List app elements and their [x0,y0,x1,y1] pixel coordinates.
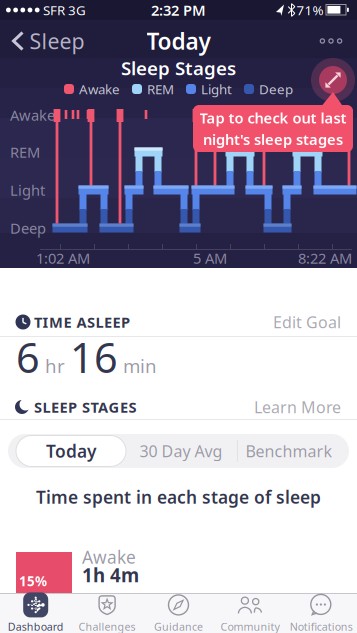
staticText: 8:22 AM [298,248,352,268]
staticText: Deep [259,80,293,98]
staticText: Tap to check out last [199,108,346,127]
staticText: REM [147,80,174,98]
button[interactable]: Learn More [241,392,341,422]
staticText: night's sleep stages [203,129,343,149]
staticText: 30 Day Avg [139,440,222,462]
staticText: Awake [79,80,120,98]
staticText: Community [220,619,279,633]
staticText: 6 [16,330,40,384]
staticText: SLEEP STAGES [34,397,136,417]
staticText: Today [146,26,210,56]
button[interactable]: 30 Day Avg [131,434,231,468]
staticText: Edit Goal [273,311,341,333]
staticText: Dashboard [8,619,64,633]
staticText: Awake [10,105,55,125]
staticText: Time spent in each stage of sleep [36,485,321,508]
staticText: 15% [19,572,47,590]
staticText: 16 [70,330,118,384]
staticText: 1h 4m [82,563,139,587]
staticText: TIME ASLEEP [34,312,130,332]
staticText: Challenges [79,619,136,633]
staticText: 2:32 PM [151,0,206,20]
button[interactable]: Dashboard [0,593,71,633]
button[interactable]: Expand sleep stages chart [311,58,355,102]
staticText: Deep [10,218,46,238]
staticText: Learn More [254,396,341,418]
staticText: 3G [68,1,86,19]
staticText: Sleep [29,27,84,55]
button[interactable]: Benchmark [239,434,339,468]
button[interactable]: Community [214,593,285,633]
staticText: REM [10,142,40,162]
staticText: Today [46,439,96,462]
staticText: SFR [43,1,65,19]
button[interactable]: More options [316,31,346,51]
staticText: Benchmark [245,440,332,462]
staticText: Light [201,80,232,98]
staticText: Guidance [154,619,203,633]
staticText: hr [45,353,65,378]
staticText: min [123,353,157,378]
staticText: Awake [82,545,136,568]
button[interactable]: Today [16,435,126,466]
button[interactable]: Edit Goal [251,307,341,337]
button[interactable]: Notifications [286,593,357,633]
staticText: Sleep Stages [121,56,236,80]
staticText: 1:02 AM [36,248,90,268]
staticText: 5 AM [193,248,227,268]
staticText: Light [10,180,45,200]
staticText: Notifications [290,619,353,633]
button[interactable]: Back to Sleep [10,22,86,60]
button[interactable]: Guidance [143,593,214,633]
button[interactable]: Challenges [72,593,143,633]
staticText: 71% [296,1,323,19]
